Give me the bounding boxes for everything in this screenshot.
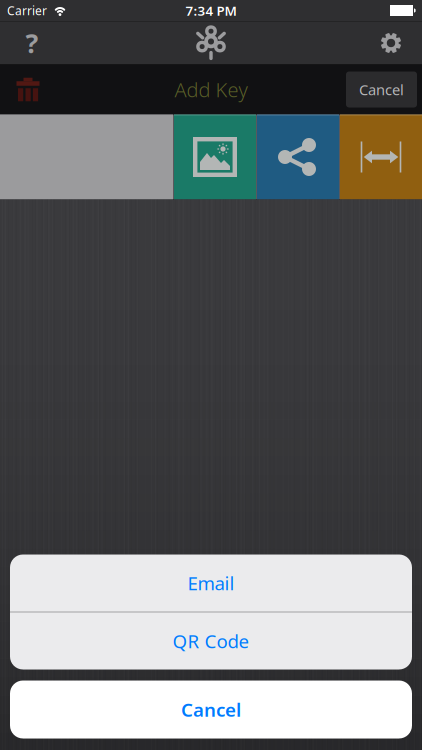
staticText: ?	[25, 25, 38, 61]
staticText: Cancel	[359, 80, 404, 99]
button[interactable]: Settings	[369, 21, 413, 64]
staticText: Carrier	[7, 2, 47, 18]
staticText: Email	[187, 571, 234, 595]
staticText: Cancel	[181, 697, 241, 722]
button[interactable]: Choose background image	[174, 114, 256, 199]
button[interactable]: Delete	[8, 64, 48, 114]
button[interactable]: Share key	[257, 114, 339, 199]
button[interactable]: Cancel	[10, 680, 412, 738]
staticText: 7:34 PM	[185, 2, 236, 19]
button[interactable]: Cancel	[346, 71, 417, 107]
button[interactable]: QR Code	[10, 612, 412, 669]
button[interactable]: Email	[10, 554, 412, 611]
staticText: QR Code	[172, 629, 249, 653]
staticText: Add Key	[174, 76, 247, 103]
button[interactable]: Help	[10, 21, 54, 64]
button[interactable]: Resize	[340, 114, 422, 199]
